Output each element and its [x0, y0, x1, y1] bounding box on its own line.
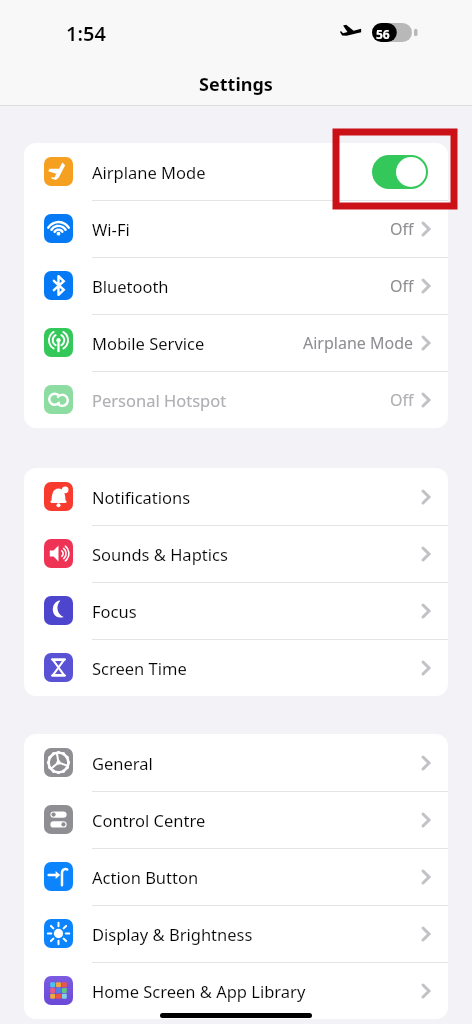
staticText: Display & Brightness [92, 923, 253, 945]
staticText: 56 [376, 26, 390, 42]
button[interactable]: Control Centre [24, 791, 448, 848]
button[interactable]: Sounds & Haptics [24, 525, 448, 582]
button[interactable]: Airplane Mode toggle, on [372, 155, 428, 189]
staticText: Control Centre [92, 809, 206, 831]
button[interactable]: Airplane Mode [24, 143, 448, 200]
staticText: Off [390, 275, 414, 297]
staticText: Focus [92, 600, 137, 622]
staticText: Action Button [92, 866, 199, 888]
button[interactable]: Home Screen & App Library [24, 962, 448, 1019]
staticText: Airplane Mode [92, 161, 206, 183]
button[interactable]: Wi-Fi [24, 200, 448, 257]
staticText: Notifications [92, 486, 191, 508]
staticText: General [92, 752, 153, 774]
button[interactable]: General [24, 734, 448, 791]
button[interactable]: Screen Time [24, 639, 448, 696]
staticText: Airplane Mode [303, 332, 414, 354]
staticText: Wi-Fi [92, 218, 130, 240]
staticText: Personal Hotspot [92, 389, 227, 411]
staticText: Mobile Service [92, 332, 205, 354]
button[interactable]: Mobile Service [24, 314, 448, 371]
button[interactable]: Focus [24, 582, 448, 639]
staticText: Off [390, 389, 414, 411]
staticText: 1:54 [66, 20, 106, 47]
button[interactable]: Display & Brightness [24, 905, 448, 962]
button[interactable]: Notifications [24, 468, 448, 525]
staticText: Bluetooth [92, 275, 169, 297]
staticText: Sounds & Haptics [92, 543, 228, 565]
staticText: Screen Time [92, 657, 187, 679]
staticText: Off [390, 218, 414, 240]
staticText: Settings [0, 72, 472, 97]
button[interactable]: Personal Hotspot [24, 371, 448, 428]
staticText: Home Screen & App Library [92, 980, 306, 1002]
button[interactable]: Action Button [24, 848, 448, 905]
button[interactable]: Bluetooth [24, 257, 448, 314]
